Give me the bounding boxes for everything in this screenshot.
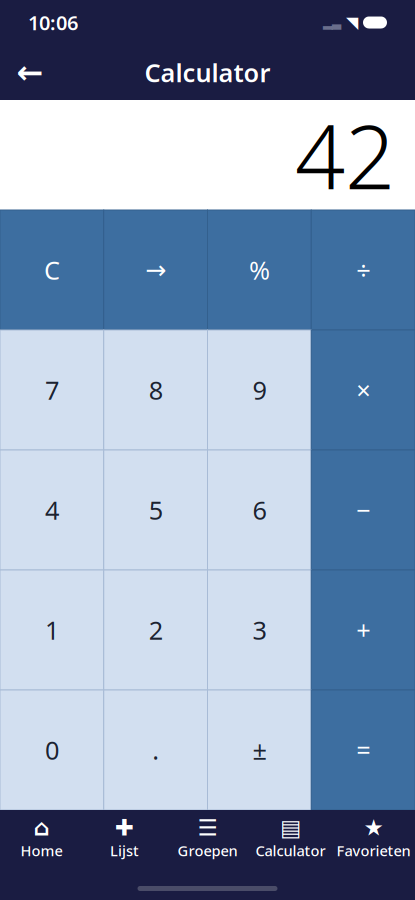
staticText: Favorieten: [336, 841, 410, 860]
staticText: 0: [45, 733, 59, 767]
button[interactable]: →: [104, 210, 208, 330]
staticText: ⌂: [33, 815, 49, 841]
button[interactable]: 1: [0, 570, 104, 690]
button[interactable]: C: [0, 210, 104, 330]
staticText: Lijst: [110, 841, 139, 860]
button[interactable]: 0: [0, 690, 104, 810]
button[interactable]: =: [311, 690, 415, 810]
button[interactable]: −: [311, 450, 415, 570]
staticText: 6: [252, 493, 266, 527]
button[interactable]: +: [311, 570, 415, 690]
staticText: ▂▃: [323, 16, 341, 29]
staticText: ±: [252, 733, 266, 767]
button[interactable]: .: [104, 690, 208, 810]
staticText: %: [249, 253, 270, 287]
button[interactable]: ★: [332, 812, 415, 860]
button[interactable]: ☰: [166, 812, 249, 860]
staticText: 4: [45, 493, 59, 527]
button[interactable]: ÷: [311, 210, 415, 330]
staticText: Home: [20, 841, 62, 860]
staticText: Groepen: [177, 841, 237, 860]
button[interactable]: 3: [207, 570, 311, 690]
staticText: 7: [45, 373, 59, 407]
staticText: 2: [149, 613, 163, 647]
button[interactable]: 7: [0, 330, 104, 450]
button[interactable]: %: [207, 210, 311, 330]
staticText: 42: [295, 97, 395, 213]
staticText: Calculator: [255, 841, 325, 860]
staticText: ×: [356, 373, 370, 407]
staticText: 10:06: [28, 9, 78, 36]
button[interactable]: Back: [8, 50, 52, 94]
staticText: −: [356, 493, 370, 527]
button[interactable]: ±: [207, 690, 311, 810]
staticText: C: [44, 253, 60, 287]
staticText: ✚: [115, 815, 134, 841]
button[interactable]: 2: [104, 570, 208, 690]
button[interactable]: 8: [104, 330, 208, 450]
staticText: 9: [252, 373, 266, 407]
staticText: 1: [45, 613, 59, 647]
staticText: ☰: [197, 815, 217, 841]
button[interactable]: 4: [0, 450, 104, 570]
staticText: 5: [149, 493, 163, 527]
staticText: ◥: [346, 13, 358, 32]
staticText: 3: [252, 613, 266, 647]
button[interactable]: 6: [207, 450, 311, 570]
staticText: ★: [363, 815, 383, 841]
button[interactable]: ▤: [249, 812, 332, 860]
staticText: +: [356, 613, 370, 647]
staticText: =: [356, 733, 370, 767]
staticText: .: [152, 733, 159, 767]
button[interactable]: ⌂: [0, 812, 83, 860]
button[interactable]: ×: [311, 330, 415, 450]
staticText: →: [145, 256, 166, 284]
button[interactable]: ✚: [83, 812, 166, 860]
staticText: ÷: [356, 253, 370, 287]
staticText: ▤: [280, 815, 301, 841]
button[interactable]: 9: [207, 330, 311, 450]
staticText: ←: [16, 54, 43, 91]
staticText: 8: [149, 373, 163, 407]
staticText: Calculator: [144, 56, 270, 89]
button[interactable]: 5: [104, 450, 208, 570]
